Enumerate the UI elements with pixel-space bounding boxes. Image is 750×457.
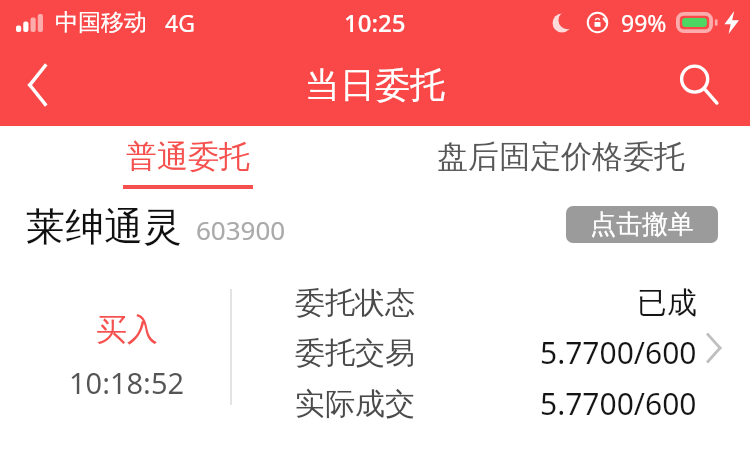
- staticText: 点击撤单: [590, 208, 694, 241]
- staticText: 5.7700/600: [540, 383, 697, 424]
- button[interactable]: 点击撤单: [566, 206, 718, 243]
- button[interactable]: 盘后固定价格委托: [437, 137, 685, 176]
- button[interactable]: Back: [0, 47, 76, 123]
- button[interactable]: 买入: [0, 262, 750, 422]
- staticText: 10:18:52: [69, 363, 185, 402]
- staticText: 603900: [196, 212, 286, 247]
- button[interactable]: 普通委托: [123, 137, 253, 189]
- staticText: 买入: [96, 310, 158, 349]
- staticText: 委托交易: [295, 334, 415, 372]
- staticText: 普通委托: [126, 137, 250, 176]
- staticText: 实际成交: [295, 385, 415, 423]
- staticText: 4G: [165, 7, 195, 38]
- staticText: 5.7700/600: [540, 332, 697, 373]
- staticText: 莱绅通灵: [26, 202, 182, 251]
- staticText: 盘后固定价格委托: [437, 137, 685, 176]
- staticText: 99%: [621, 7, 667, 38]
- staticText: 已成: [637, 284, 697, 322]
- staticText: 委托状态: [295, 284, 415, 322]
- staticText: 中国移动: [55, 8, 147, 37]
- button[interactable]: Search: [664, 51, 732, 119]
- staticText: 当日委托: [305, 63, 445, 107]
- staticText: 10:25: [344, 6, 406, 39]
